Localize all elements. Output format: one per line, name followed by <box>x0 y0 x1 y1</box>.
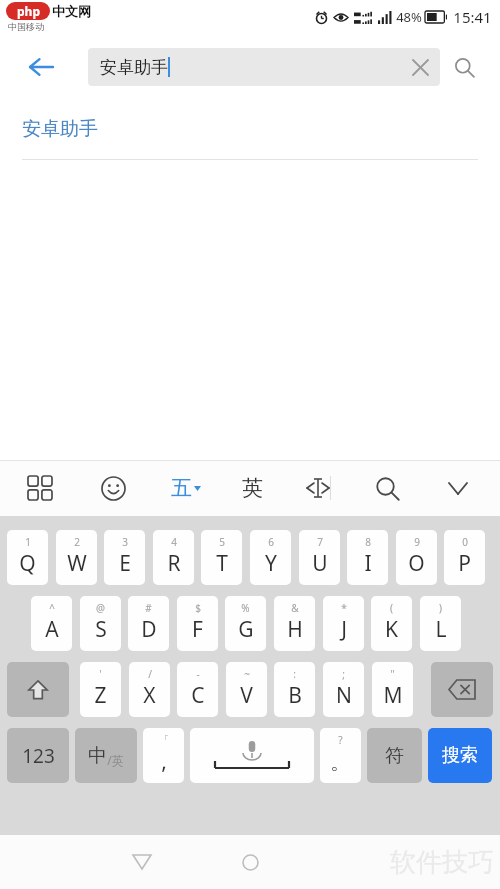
button[interactable]: * <box>323 596 364 651</box>
staticText: ' <box>99 667 102 681</box>
button[interactable]: Symbols <box>367 728 422 783</box>
staticText: 中文网 <box>52 3 91 19</box>
staticText: Y <box>265 549 277 578</box>
button[interactable]: 英 <box>230 466 274 510</box>
button[interactable]: ' <box>80 662 121 717</box>
button[interactable]: ^ <box>31 596 72 651</box>
button[interactable]: 0 <box>444 530 485 585</box>
button[interactable]: Numbers <box>7 728 69 783</box>
button[interactable]: 8 <box>347 530 388 585</box>
button[interactable]: & <box>274 596 315 651</box>
staticText: K <box>385 615 398 644</box>
staticText: S <box>95 615 107 644</box>
staticText: 安卓助手 <box>100 57 168 78</box>
button[interactable]: ( <box>371 596 412 651</box>
staticText: $ <box>195 601 201 615</box>
staticText: & <box>291 601 299 615</box>
button[interactable]: 五 <box>163 465 209 511</box>
button[interactable]: 7 <box>299 530 340 585</box>
staticText: V <box>240 681 253 710</box>
staticText: 48% <box>396 8 422 26</box>
staticText: @ <box>96 601 105 615</box>
staticText: " <box>390 667 395 681</box>
button[interactable]: ; <box>323 662 364 717</box>
button[interactable]: " <box>372 662 413 717</box>
staticText: 8 <box>365 535 371 549</box>
staticText: ? <box>338 733 343 747</box>
staticText: ( <box>390 601 393 615</box>
staticText: H <box>287 615 303 644</box>
staticText: 「 <box>159 733 169 746</box>
button[interactable]: 「 <box>143 728 184 783</box>
staticText: D <box>141 615 157 644</box>
button[interactable]: % <box>225 596 266 651</box>
button[interactable]: Space <box>190 728 314 783</box>
staticText: % <box>241 601 250 615</box>
staticText: - <box>196 667 200 681</box>
button[interactable]: Back <box>118 838 166 886</box>
staticText: 安卓助手 <box>22 117 98 141</box>
staticText: /英 <box>107 752 124 768</box>
button[interactable]: ~ <box>226 662 267 717</box>
button[interactable]: Shift <box>7 662 69 717</box>
staticText: 5 <box>219 535 225 549</box>
staticText: P <box>458 549 471 578</box>
button[interactable]: # <box>128 596 169 651</box>
button[interactable]: 2 <box>56 530 97 585</box>
staticText: 123 <box>22 743 55 769</box>
staticText: O <box>408 549 425 578</box>
staticText: 符 <box>385 744 404 768</box>
staticText: A <box>45 615 59 644</box>
staticText: : <box>293 667 296 681</box>
staticText: 7 <box>317 535 323 549</box>
button[interactable]: 5 <box>201 530 242 585</box>
button[interactable]: 搜索 <box>428 728 492 783</box>
staticText: 中 <box>88 744 107 768</box>
staticText: ) <box>439 601 442 615</box>
button[interactable]: / <box>129 662 170 717</box>
button[interactable]: Switch language <box>75 728 137 783</box>
staticText: M <box>383 681 403 710</box>
staticText: 搜索 <box>442 744 478 767</box>
button[interactable]: Hide keyboard <box>436 466 480 510</box>
staticText: 0 <box>462 535 468 549</box>
staticText: ~ <box>244 667 250 681</box>
button[interactable]: @ <box>80 596 121 651</box>
staticText: T <box>216 549 228 578</box>
staticText: * <box>341 601 347 615</box>
button[interactable]: Emoji <box>91 466 135 510</box>
button[interactable]: Home <box>226 838 274 886</box>
staticText: U <box>312 549 328 578</box>
button[interactable]: Keyboard layouts <box>18 466 62 510</box>
button[interactable]: : <box>274 662 315 717</box>
button[interactable]: 6 <box>250 530 291 585</box>
button[interactable]: ? <box>320 728 361 783</box>
button[interactable]: 安卓助手 <box>88 48 440 86</box>
staticText: X <box>143 681 156 710</box>
button[interactable]: 安卓助手 <box>0 100 500 158</box>
button[interactable]: Search <box>365 466 409 510</box>
button[interactable]: $ <box>177 596 218 651</box>
button[interactable]: Cursor control <box>296 466 340 510</box>
staticText: # <box>145 601 152 615</box>
staticText: I <box>364 549 372 578</box>
button[interactable]: 9 <box>396 530 437 585</box>
button[interactable]: - <box>177 662 218 717</box>
staticText: php <box>17 3 40 19</box>
button[interactable]: 4 <box>153 530 194 585</box>
staticText: C <box>191 681 205 710</box>
button[interactable]: ) <box>420 596 461 651</box>
staticText: , <box>161 747 167 776</box>
staticText: 1 <box>25 535 31 549</box>
staticText: 。 <box>330 749 351 775</box>
button[interactable]: 1 <box>7 530 48 585</box>
button[interactable]: 3 <box>104 530 145 585</box>
button[interactable]: Search <box>442 45 486 89</box>
button[interactable]: Back <box>14 41 66 93</box>
staticText: / <box>148 667 152 681</box>
staticText: 15:41 <box>453 7 492 27</box>
staticText: 五 <box>171 475 192 501</box>
button[interactable]: Backspace <box>431 662 493 717</box>
staticText: F <box>192 615 203 644</box>
button[interactable]: Clear <box>400 48 440 86</box>
